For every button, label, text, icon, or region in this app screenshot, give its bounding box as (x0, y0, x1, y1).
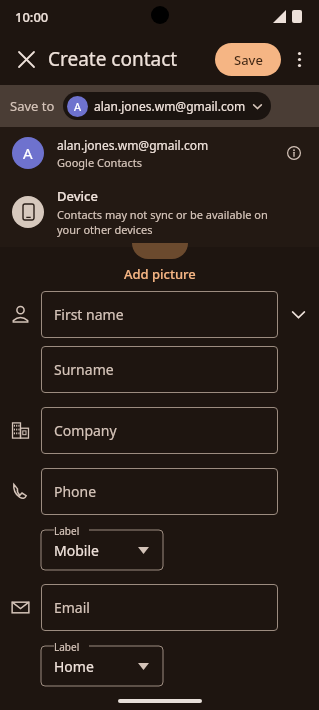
staticText: Contacts may not sync or be available on… (57, 207, 285, 237)
button[interactable]: Device (0, 179, 319, 245)
staticText: Save to (10, 97, 55, 115)
button[interactable]: Phone (41, 468, 278, 515)
staticText: alan.jones.wm@gmail.com (57, 137, 209, 153)
button[interactable]: Company (41, 407, 278, 454)
staticText: alan.jones.wm@gmail.com (94, 98, 246, 114)
button[interactable]: First name (41, 291, 278, 338)
button[interactable]: A (63, 92, 271, 120)
staticText: Phone (54, 482, 97, 501)
button[interactable]: Add picture (116, 263, 204, 285)
staticText: First name (54, 305, 124, 324)
staticText: Label (54, 524, 80, 538)
staticText: Google Contacts (57, 155, 143, 170)
button[interactable]: A (0, 127, 319, 179)
staticText: Device (57, 187, 98, 205)
button[interactable]: Home (41, 646, 163, 686)
button[interactable]: Save (215, 43, 281, 76)
staticText: Save (234, 51, 263, 69)
staticText: Create contact (48, 46, 178, 72)
button[interactable]: Info (281, 140, 307, 166)
staticText: A (74, 99, 82, 114)
button[interactable]: Expand name fields (278, 291, 319, 338)
button[interactable]: Mobile (41, 530, 163, 570)
staticText: Surname (54, 360, 114, 379)
staticText: Home (54, 657, 94, 676)
staticText: Company (54, 421, 117, 440)
staticText: Label (54, 640, 80, 654)
staticText: Mobile (54, 541, 99, 560)
staticText: A (23, 143, 33, 163)
staticText: 10:00 (15, 8, 49, 26)
button[interactable]: Surname (41, 346, 278, 393)
button[interactable]: Email (41, 584, 278, 631)
button[interactable]: Close (6, 39, 46, 79)
staticText: Email (54, 598, 90, 617)
button[interactable]: More options (281, 41, 317, 77)
staticText: Add picture (124, 265, 196, 283)
